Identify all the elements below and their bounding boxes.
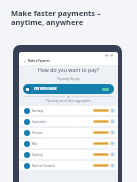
staticText: Make faster payments – anytime, anywhere [11,8,101,27]
staticText: CONNECTED [94,153,108,156]
staticText: Santander [32,120,47,124]
staticText: PAY WITH BANK [34,87,57,91]
staticText: Bank of Scotland [32,164,55,168]
staticText: Make a Payment [28,59,50,63]
staticText: Finance [32,131,43,135]
button[interactable]: Santander [19,117,118,126]
staticText: or [67,95,70,99]
staticText: CONNECTED [94,164,108,167]
staticText: CONNECTED [94,109,108,112]
staticText: Pay using this app [19,77,118,81]
button[interactable]: Barclays [19,106,118,115]
button[interactable]: Nbs [19,139,118,148]
button[interactable]: Finance [19,128,118,137]
staticText: Barclays [32,109,44,113]
staticText: CONNECTED [94,120,108,123]
button[interactable]: Starling [19,150,118,159]
button[interactable]: PAY WITH BANK [23,84,114,94]
staticText: Pay using one of these aggregators [19,99,118,103]
staticText: Nbs [32,142,38,146]
other: Back [23,60,26,63]
staticText: Starling [32,153,43,157]
staticText: CONNECTED [94,131,108,134]
button[interactable]: Back [19,57,118,65]
staticText: CONNECTED [94,142,108,145]
staticText: How do you want to pay? [19,66,118,73]
button[interactable]: Bank of Scotland [19,161,118,170]
